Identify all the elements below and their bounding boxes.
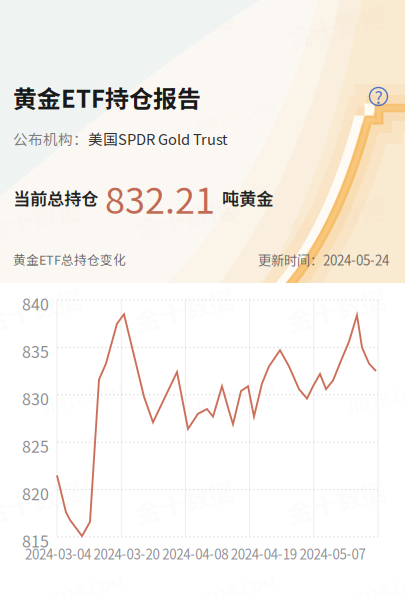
staticText: 金十数据 [286, 8, 386, 45]
staticText: JIN10.COM [344, 296, 405, 319]
staticText: JIN10.COM [40, 488, 125, 511]
staticText: 黄金ETF持仓报告 [13, 80, 201, 115]
staticText: JIN10.COM [192, 104, 277, 127]
staticText: 金十数据 [0, 392, 82, 429]
staticText: 金十数据 [0, 200, 82, 237]
staticText: 公布机构： [13, 128, 88, 149]
staticText: 当前总持仓 [13, 185, 98, 211]
staticText: 金十数据 [286, 291, 386, 328]
staticText: 金十数据 [134, 8, 234, 45]
staticText: 金十数据 [286, 483, 386, 520]
staticText: ? [374, 84, 382, 109]
staticText: JIN10.COM [344, 387, 405, 410]
staticText: 金十数据 [286, 200, 386, 237]
staticText: 2024-04-19 [231, 544, 297, 563]
staticText: JIN10.COM [344, 488, 405, 511]
staticText: 金十数据 [0, 483, 82, 520]
staticText: 金十数据 [134, 392, 234, 429]
staticText: JIN10.COM [192, 488, 277, 511]
staticText: 金十数据 [134, 291, 234, 328]
staticText: JIN10.COM [40, 104, 125, 127]
staticText: 吨黄金 [222, 185, 273, 211]
staticText: 2024-04-08 [162, 544, 228, 563]
staticText: JIN10.COM [40, 387, 125, 410]
staticText: JIN10.COM [192, 387, 277, 410]
staticText: 835 [22, 339, 49, 363]
staticText: 金十数据 [134, 483, 234, 520]
staticText: 830 [22, 387, 49, 410]
staticText: JIN10.COM [192, 296, 277, 319]
staticText: JIN10.COM [40, 296, 125, 319]
staticText: 832.21 [105, 172, 215, 224]
staticText: 2024-05-07 [299, 544, 365, 563]
staticText: 更新时间：2024-05-24 [258, 250, 389, 269]
button[interactable]: 帮助说明 [369, 87, 388, 106]
staticText: 美国SPDR Gold Trust [88, 128, 228, 149]
staticText: 黄金ETF总持仓变化 [13, 250, 126, 268]
staticText: 2024-03-20 [94, 544, 160, 563]
staticText: 金十数据 [286, 392, 386, 429]
staticText: JIN10.COM [344, 104, 405, 127]
staticText: 金十数据 [134, 200, 234, 237]
staticText: 840 [22, 292, 49, 315]
staticText: 金十数据 [0, 291, 82, 328]
staticText: 825 [22, 434, 49, 457]
staticText: 815 [22, 529, 49, 552]
staticText: 2024-03-04 [25, 544, 91, 563]
staticText: 820 [22, 482, 49, 505]
